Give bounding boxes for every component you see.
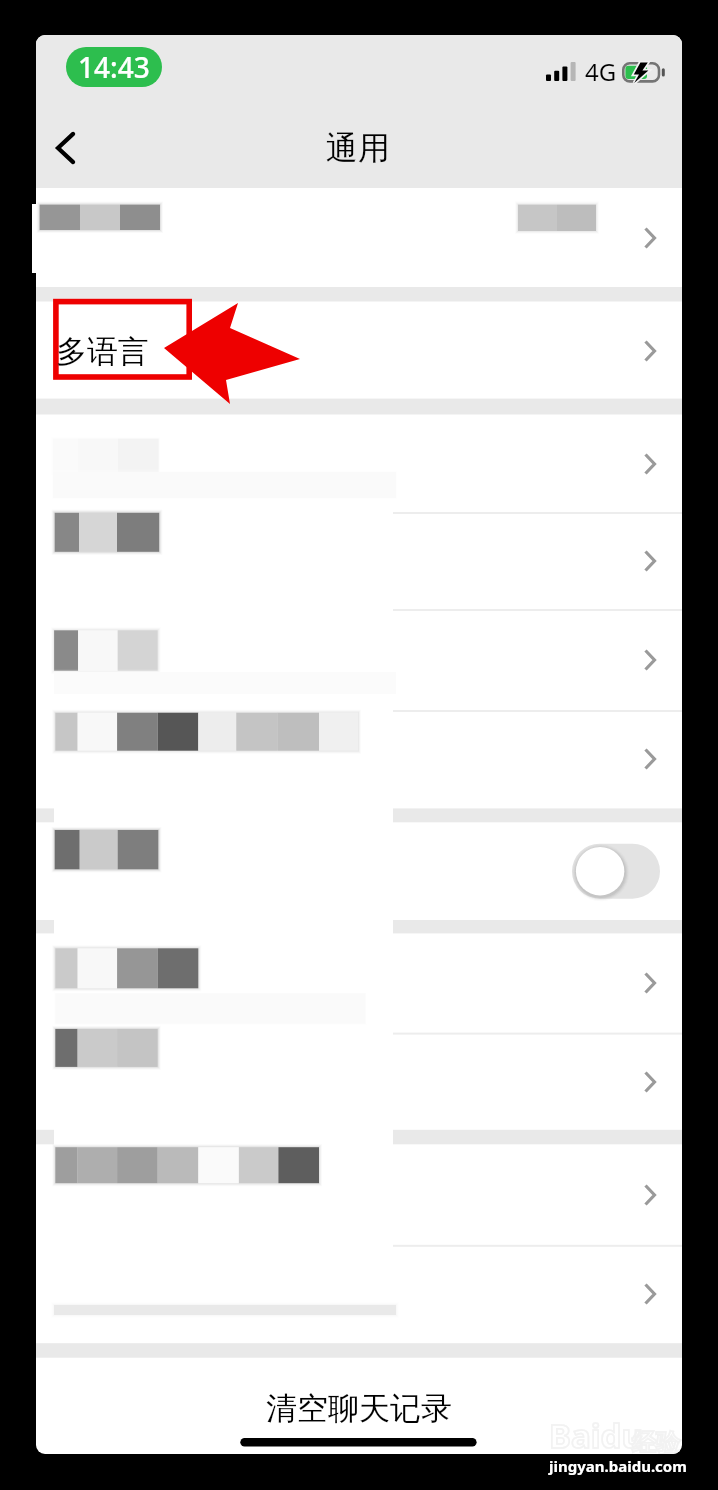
button[interactable]: Back: [36, 113, 96, 183]
button[interactable]: 清空聊天记录: [36, 1358, 682, 1454]
button[interactable]: [36, 609, 682, 710]
button[interactable]: [36, 1144, 682, 1245]
staticText: 清空聊天记录: [266, 1389, 452, 1428]
button[interactable]: Toggle: [36, 822, 682, 920]
staticText: 经验: [632, 1428, 680, 1454]
staticText: 4G: [585, 55, 617, 88]
staticText: 14:43: [78, 48, 150, 86]
staticText: 通用: [326, 128, 390, 168]
button[interactable]: [36, 710, 682, 808]
staticText: Baidu: [549, 1413, 643, 1454]
button[interactable]: [36, 1033, 682, 1130]
button[interactable]: [36, 188, 682, 287]
button[interactable]: [36, 302, 682, 399]
staticText: jingyan.baidu.com: [549, 1456, 687, 1476]
button[interactable]: [36, 415, 682, 513]
button[interactable]: [36, 512, 682, 609]
button[interactable]: [36, 1245, 682, 1343]
button[interactable]: [36, 933, 682, 1032]
staticText: 多语言: [56, 332, 149, 371]
